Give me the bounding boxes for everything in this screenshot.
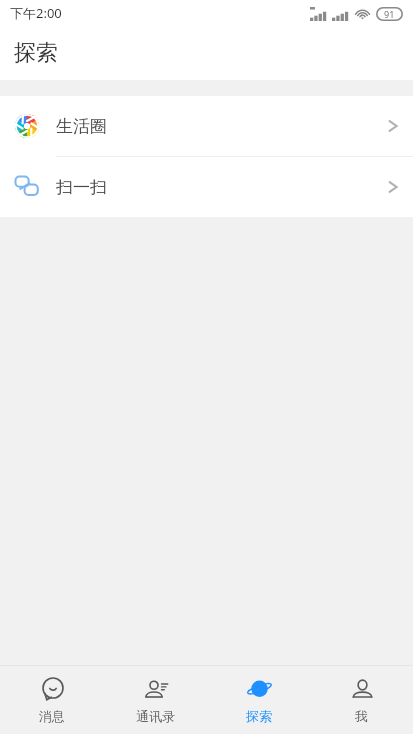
button[interactable]: 探索 xyxy=(207,666,310,734)
staticText: 我 xyxy=(355,708,368,724)
button[interactable]: 生活圈 xyxy=(0,96,413,156)
staticText: 探索 xyxy=(14,39,58,67)
button[interactable]: 消息 xyxy=(0,666,104,734)
staticText: 消息 xyxy=(39,708,65,724)
other: 通讯录 xyxy=(144,677,169,702)
staticText: 生活圈 xyxy=(56,116,107,137)
other: 消息 xyxy=(40,677,65,702)
button[interactable]: 通讯录 xyxy=(104,666,207,734)
button[interactable]: 扫一扫 xyxy=(0,157,413,217)
other: 探索 xyxy=(247,677,272,702)
other: 我 xyxy=(350,677,375,702)
button[interactable]: 我 xyxy=(310,666,413,734)
staticText: 扫一扫 xyxy=(56,177,107,198)
staticText: 通讯录 xyxy=(136,708,175,724)
staticText: 探索 xyxy=(246,708,272,724)
staticText: 下午2:00 xyxy=(10,4,62,22)
staticText: 91 xyxy=(384,8,395,20)
